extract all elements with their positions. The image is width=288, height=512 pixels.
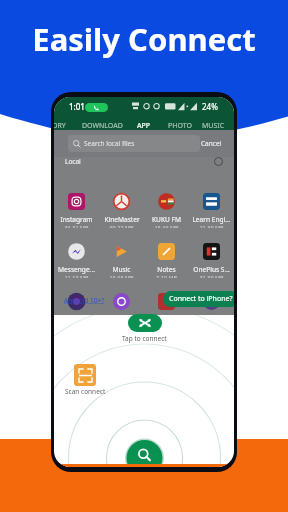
staticText: 15.46 MB [154,224,179,228]
staticText: Notes [157,265,176,274]
staticText: Instagram [60,215,93,224]
staticText: ORY [54,121,66,130]
button[interactable]: PHOTO [156,121,204,130]
staticText: 7.19 MB [156,274,177,278]
button[interactable] [189,278,234,315]
staticText: 34.31 MB [64,224,89,228]
button[interactable]: Notes [144,228,189,278]
staticText: 15.05 MB [109,274,134,278]
button[interactable]: Call [85,103,108,112]
button[interactable] [144,278,189,315]
button[interactable]: Cancel [201,139,222,148]
button[interactable]: Connect to iPhone? [169,291,233,307]
staticText: MUSIC [202,121,225,130]
staticText: 1:01 [69,101,85,112]
button[interactable]: DOWNLOAD [78,121,126,130]
staticText: 21.39 MB [199,224,224,228]
staticText: Connect to iPhone? [169,294,233,304]
staticText: PHOTO [168,121,192,130]
button[interactable]: OnePlus S... [189,228,234,278]
button[interactable]: Scan connect [74,364,96,386]
button[interactable]: KineMaster [99,178,144,228]
button[interactable] [54,278,99,315]
button[interactable]: Music [99,228,144,278]
staticText: KineMaster [104,215,140,224]
button[interactable]: ORY [54,121,83,130]
button[interactable]: Learn Engl... [189,178,234,228]
staticText: 11.13 MB [64,274,89,278]
staticText: Local [65,157,81,166]
button[interactable]: APP [120,121,168,130]
staticText: OnePlus S... [193,265,230,274]
staticText: Search local files [84,139,135,148]
staticText: 31.30 MB [199,274,224,278]
staticText: Easily Connect [0,18,288,60]
button[interactable]: Scan connect [65,387,106,396]
staticText: 24% [202,101,218,112]
button[interactable]: Search local files [68,135,200,152]
button[interactable]: Messenge... [54,228,99,278]
staticText: 69.72 MB [109,224,134,228]
staticText: Music [112,265,131,274]
staticText: Tap to connect [122,334,167,343]
staticText: APP [137,121,151,130]
button[interactable]: MUSIC [189,121,234,130]
button[interactable]: Tap to connect [128,314,162,332]
staticText: KUKU FM [152,215,181,224]
staticText: DOWNLOAD [82,121,123,130]
button[interactable]: KUKU FM [144,178,189,228]
staticText: Learn Engl... [192,215,231,224]
staticText: Messenge... [58,265,95,274]
button[interactable]: Android 10+? [64,296,104,305]
button[interactable]: Instagram [54,178,99,228]
button[interactable] [99,278,144,315]
